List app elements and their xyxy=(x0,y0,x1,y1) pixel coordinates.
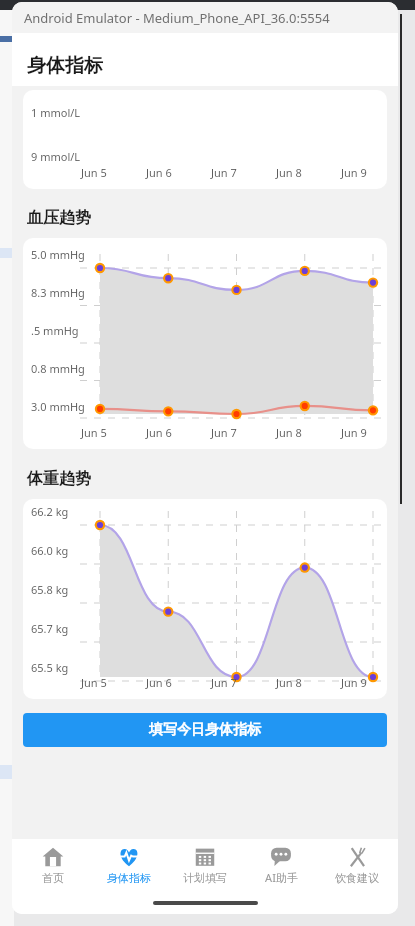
staticText: 65.8 kg xyxy=(31,582,69,597)
staticText: Jun 9 xyxy=(341,675,381,690)
staticText: Jun 8 xyxy=(276,165,316,180)
button[interactable]: 首页 xyxy=(18,839,88,891)
staticText: Jun 6 xyxy=(146,165,186,180)
staticText: Jun 9 xyxy=(341,425,381,440)
other: AI助手 xyxy=(270,845,292,867)
other: 饮食建议 xyxy=(346,846,368,868)
staticText: AI助手 xyxy=(265,870,298,885)
staticText: Jun 5 xyxy=(81,675,121,690)
staticText: Jun 9 xyxy=(341,165,381,180)
staticText: 66.2 kg xyxy=(31,504,69,519)
staticText: 身体指标 xyxy=(107,871,151,885)
staticText: 65.7 kg xyxy=(31,621,69,636)
staticText: 体重趋势 xyxy=(27,469,91,489)
staticText: Jun 7 xyxy=(211,675,251,690)
staticText: 66.0 kg xyxy=(31,543,69,558)
staticText: 首页 xyxy=(42,871,64,885)
staticText: 8.3 mmHg xyxy=(31,285,85,300)
button[interactable]: 饮食建议 xyxy=(322,839,392,891)
staticText: Jun 8 xyxy=(276,675,316,690)
staticText: Jun 7 xyxy=(211,425,251,440)
button[interactable]: 计划填写 xyxy=(170,839,240,891)
staticText: .5 mmHg xyxy=(31,323,79,338)
staticText: 9 mmol/L xyxy=(31,149,81,164)
button[interactable]: 填写今日身体指标 xyxy=(23,713,387,747)
staticText: 饮食建议 xyxy=(335,871,379,885)
staticText: 填写今日身体指标 xyxy=(149,721,261,739)
other: 首页 xyxy=(42,846,64,868)
staticText: 0.8 mmHg xyxy=(31,361,85,376)
staticText: 1 mmol/L xyxy=(31,105,81,120)
other: 计划填写 xyxy=(194,846,216,868)
staticText: Jun 8 xyxy=(276,425,316,440)
button[interactable]: 身体指标 xyxy=(94,839,164,891)
staticText: 血压趋势 xyxy=(27,208,91,228)
staticText: Android Emulator - Medium_Phone_API_36.0… xyxy=(24,9,330,27)
staticText: Jun 6 xyxy=(146,675,186,690)
staticText: 3.0 mmHg xyxy=(31,399,85,414)
other: 身体指标 xyxy=(118,846,140,868)
staticText: 计划填写 xyxy=(183,871,227,885)
staticText: Jun 5 xyxy=(81,425,121,440)
button[interactable]: AI助手 xyxy=(246,839,316,891)
staticText: 身体指标 xyxy=(27,54,103,78)
staticText: Jun 7 xyxy=(211,165,251,180)
staticText: 5.0 mmHg xyxy=(31,247,85,262)
staticText: Jun 5 xyxy=(81,165,121,180)
staticText: Jun 6 xyxy=(146,425,186,440)
staticText: 65.5 kg xyxy=(31,660,69,675)
